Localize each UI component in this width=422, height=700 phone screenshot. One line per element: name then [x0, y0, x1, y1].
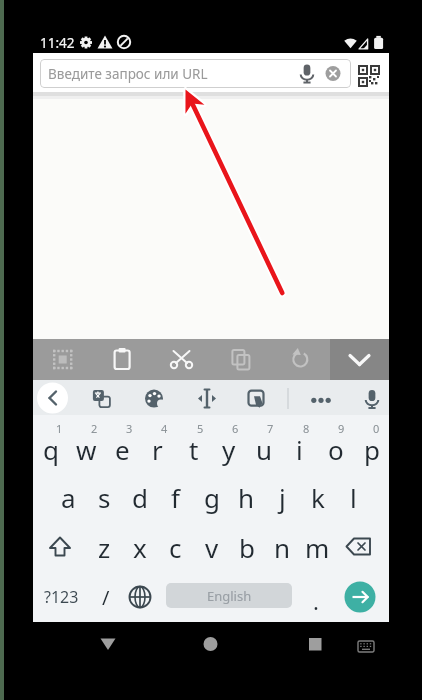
button[interactable]: m: [300, 527, 335, 567]
staticText: 2: [91, 421, 98, 435]
button[interactable]: [155, 341, 211, 379]
button[interactable]: [306, 383, 336, 413]
staticText: .: [313, 586, 319, 616]
button[interactable]: [274, 341, 330, 379]
staticText: 8: [303, 421, 310, 435]
button[interactable]: [350, 632, 382, 660]
button[interactable]: e: [105, 429, 140, 469]
button[interactable]: [295, 628, 335, 662]
staticText: p: [364, 432, 380, 467]
button[interactable]: English: [166, 583, 292, 608]
staticText: t: [189, 432, 199, 467]
staticText: English: [207, 587, 252, 605]
staticText: b: [239, 530, 255, 565]
button[interactable]: n: [265, 527, 300, 567]
button[interactable]: [322, 61, 346, 87]
button[interactable]: l: [336, 477, 371, 517]
button[interactable]: [355, 62, 383, 88]
staticText: 9: [338, 421, 345, 435]
button[interactable]: [86, 383, 116, 413]
staticText: m: [305, 530, 330, 565]
button[interactable]: [95, 341, 151, 379]
staticText: f: [171, 480, 180, 515]
staticText: q: [43, 432, 59, 467]
button[interactable]: .: [302, 584, 330, 618]
staticText: e: [115, 432, 130, 467]
staticText: Введите запрос или URL: [48, 65, 208, 83]
staticText: l: [350, 480, 357, 515]
staticText: d: [132, 480, 148, 515]
staticText: 1: [56, 421, 63, 435]
staticText: o: [328, 432, 344, 467]
button[interactable]: [192, 383, 222, 413]
button[interactable]: ?123: [35, 581, 87, 613]
staticText: i: [296, 432, 303, 467]
button[interactable]: [40, 528, 82, 566]
button[interactable]: k: [300, 477, 335, 517]
button[interactable]: [345, 582, 376, 613]
button[interactable]: [36, 341, 92, 379]
staticText: g: [204, 480, 220, 515]
staticText: y: [222, 432, 236, 467]
staticText: /: [102, 584, 110, 611]
button[interactable]: [139, 383, 169, 413]
button[interactable]: u: [247, 429, 282, 469]
button[interactable]: c: [158, 527, 193, 567]
button[interactable]: [191, 628, 231, 662]
button[interactable]: [340, 528, 382, 566]
staticText: k: [311, 480, 325, 515]
button[interactable]: p: [354, 429, 389, 469]
button[interactable]: o: [318, 429, 353, 469]
staticText: a: [61, 480, 76, 515]
button[interactable]: s: [87, 477, 122, 517]
button[interactable]: b: [229, 527, 264, 567]
button[interactable]: q: [33, 429, 68, 469]
staticText: r: [152, 432, 163, 467]
staticText: v: [205, 530, 219, 565]
staticText: z: [98, 530, 111, 565]
staticText: 4: [161, 421, 168, 435]
button[interactable]: i: [282, 429, 317, 469]
staticText: n: [274, 530, 291, 565]
button[interactable]: r: [140, 429, 175, 469]
button[interactable]: y: [211, 429, 246, 469]
button[interactable]: v: [194, 527, 229, 567]
button[interactable]: [122, 580, 158, 614]
button[interactable]: [241, 383, 271, 413]
button[interactable]: z: [87, 527, 122, 567]
button[interactable]: [330, 339, 389, 380]
staticText: h: [238, 480, 255, 515]
button[interactable]: /: [90, 579, 122, 615]
button[interactable]: [214, 341, 270, 379]
button[interactable]: [40, 59, 351, 88]
staticText: 6: [232, 421, 239, 435]
button[interactable]: [37, 383, 68, 414]
button[interactable]: [295, 60, 321, 88]
staticText: 5: [197, 421, 204, 435]
staticText: x: [133, 530, 147, 565]
button[interactable]: x: [122, 527, 157, 567]
staticText: u: [256, 432, 273, 467]
staticText: ?123: [44, 586, 79, 608]
staticText: 11:42: [40, 34, 75, 51]
button[interactable]: [88, 628, 128, 662]
button[interactable]: f: [158, 477, 193, 517]
button[interactable]: a: [51, 477, 86, 517]
button[interactable]: [357, 383, 387, 413]
button[interactable]: j: [265, 477, 300, 517]
button[interactable]: g: [194, 477, 229, 517]
button[interactable]: t: [176, 429, 211, 469]
staticText: c: [169, 530, 182, 565]
button[interactable]: w: [69, 429, 104, 469]
staticText: 3: [126, 421, 133, 435]
staticText: w: [76, 432, 97, 467]
staticText: 0: [373, 421, 380, 435]
button[interactable]: d: [122, 477, 157, 517]
staticText: 7: [267, 421, 274, 435]
button[interactable]: h: [229, 477, 264, 517]
staticText: s: [98, 480, 111, 515]
staticText: j: [279, 480, 286, 515]
